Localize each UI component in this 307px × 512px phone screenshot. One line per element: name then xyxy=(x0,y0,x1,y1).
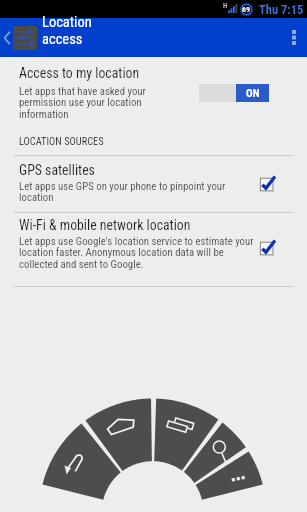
staticText: GPS satellites xyxy=(19,162,95,178)
button[interactable]: Navigate up xyxy=(0,18,133,57)
button[interactable]: Enabled xyxy=(259,241,276,257)
staticText: Let apps use GPS on your phone to pinpoi… xyxy=(19,180,257,204)
staticText: Let apps that have asked your permission… xyxy=(19,85,169,121)
staticText: Location access xyxy=(42,14,133,48)
button[interactable]: More options xyxy=(281,18,307,57)
staticText: Wi-Fi & mobile network location xyxy=(19,217,191,233)
button[interactable]: Wi-Fi & mobile network location xyxy=(0,214,307,287)
staticText: Access to my location xyxy=(19,65,140,81)
button[interactable]: Access to my location xyxy=(0,58,307,124)
staticText: 69 xyxy=(242,5,251,14)
staticText: H xyxy=(223,2,228,10)
staticText: LOCATION SOURCES xyxy=(19,135,104,147)
staticText: ON xyxy=(246,87,260,100)
staticText: Thu 7:15 xyxy=(259,2,304,17)
button[interactable]: GPS satellites xyxy=(0,156,307,212)
other: Navigate up xyxy=(4,31,10,45)
button[interactable]: Location on xyxy=(199,84,269,102)
button[interactable]: Enabled xyxy=(259,177,276,193)
button[interactable]: Pie controls xyxy=(0,0,307,512)
staticText: Let apps use Google's location service t… xyxy=(19,235,257,271)
